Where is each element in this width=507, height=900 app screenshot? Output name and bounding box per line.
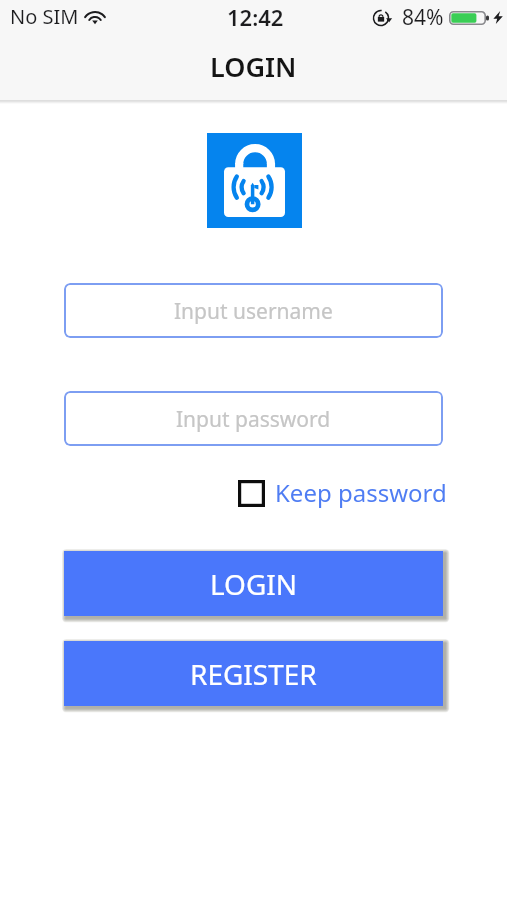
button[interactable]: Keep password: [234, 473, 451, 514]
staticText: No SIM: [10, 3, 79, 30]
button[interactable]: Input password: [64, 391, 443, 446]
button[interactable]: REGISTER: [64, 641, 443, 706]
staticText: 84%: [402, 3, 444, 32]
staticText: LOGIN: [210, 565, 298, 603]
button[interactable]: LOGIN: [64, 551, 443, 616]
staticText: Keep password: [275, 476, 447, 509]
other: Charging: [493, 11, 503, 24]
other: App logo: secured Wi-Fi key: [207, 133, 302, 228]
other: Wi-Fi: [85, 10, 105, 24]
button[interactable]: Input username: [64, 283, 443, 338]
other: Rotation lock: [372, 9, 390, 27]
staticText: Input username: [174, 297, 333, 326]
staticText: REGISTER: [190, 655, 317, 693]
staticText: 12:42: [227, 2, 284, 32]
staticText: LOGIN: [210, 48, 297, 85]
other: Battery 84 percent: [449, 11, 489, 25]
staticText: Input password: [176, 405, 331, 434]
